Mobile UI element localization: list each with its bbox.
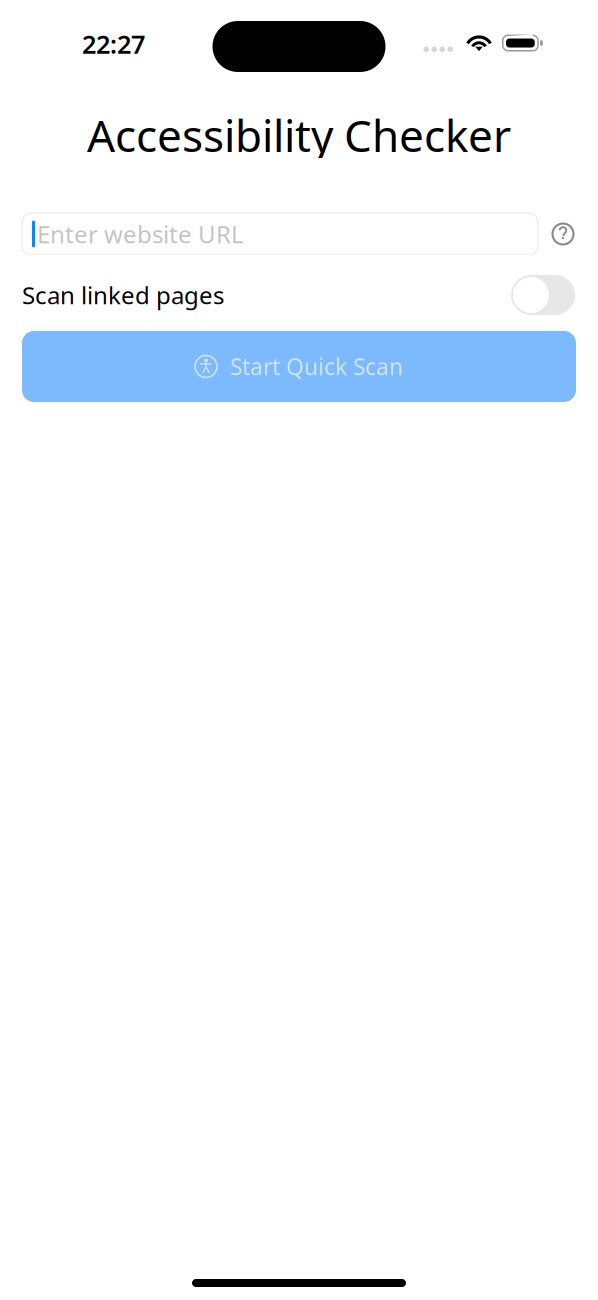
staticText: 22:27 <box>82 27 145 61</box>
button[interactable]: Enter website URL <box>22 213 538 255</box>
staticText: Scan linked pages <box>22 279 224 311</box>
staticText: Accessibility Checker <box>87 106 511 164</box>
staticText: Start Quick Scan <box>230 351 403 381</box>
button[interactable]: Help <box>538 213 584 255</box>
button[interactable]: Start Quick Scan <box>22 331 576 402</box>
button[interactable]: Scan linked pages <box>0 273 598 317</box>
staticText: Enter website URL <box>37 218 244 250</box>
